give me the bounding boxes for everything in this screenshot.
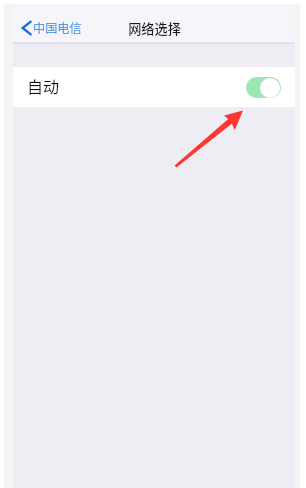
- other: 返回: [21, 20, 32, 36]
- staticText: 自动: [27, 74, 60, 97]
- button[interactable]: 返回: [13, 14, 90, 42]
- staticText: 中国电信: [33, 19, 82, 37]
- button[interactable]: 自动选择网络: [246, 77, 281, 98]
- staticText: 网络选择: [128, 19, 181, 38]
- button[interactable]: 自动: [13, 67, 295, 107]
